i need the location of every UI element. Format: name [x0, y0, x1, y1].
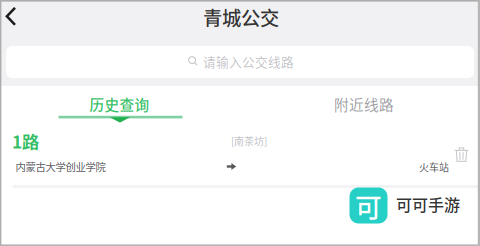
staticText: 1路 — [12, 128, 39, 154]
button[interactable]: 1路 — [0, 125, 480, 185]
staticText: 青城公交 — [203, 3, 279, 31]
staticText: 历史查询 — [89, 93, 149, 115]
button[interactable]: 请输入公交线路 — [6, 46, 474, 78]
button[interactable]: 历史查询 — [0, 90, 240, 130]
staticText: 附近线路 — [334, 93, 394, 115]
staticText: 内蒙古大学创业学院 — [15, 159, 105, 174]
staticText: [南茶坊] — [231, 134, 267, 148]
button[interactable]: 附近线路 — [240, 90, 480, 130]
staticText: 可 — [355, 186, 382, 225]
staticText: 可可手游 — [396, 192, 460, 216]
staticText: 请输入公交线路 — [203, 52, 294, 71]
button[interactable]: Delete — [448, 142, 474, 166]
staticText: 火车站 — [419, 160, 449, 174]
button[interactable]: Back — [0, 0, 29, 32]
